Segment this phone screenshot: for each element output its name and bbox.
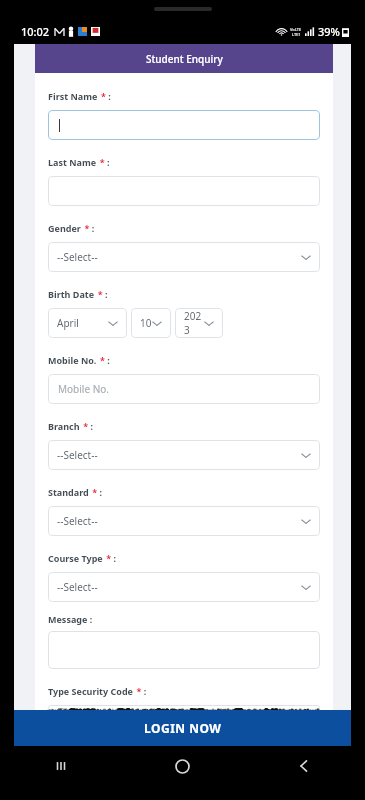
button[interactable]: LOGIN NOW [14, 710, 351, 746]
button[interactable] [48, 631, 320, 669]
staticText: April [57, 316, 108, 330]
staticText: Mobile No. [58, 382, 109, 396]
staticText: Birth Date * : [48, 283, 108, 302]
staticText: Type security code [58, 705, 145, 710]
staticText: First Name * : [48, 85, 111, 104]
staticText: Message : [48, 613, 93, 625]
button[interactable]: --Select-- [48, 506, 320, 536]
staticText: 2023 [184, 309, 204, 337]
button[interactable]: --Select-- [48, 572, 320, 602]
staticText: Standard * : [48, 481, 103, 500]
button[interactable]: April [48, 308, 127, 338]
staticText: Last Name * : [48, 151, 110, 170]
staticText: 10:02 [21, 24, 50, 39]
staticText: LTE1 [292, 32, 301, 37]
staticText: --Select-- [57, 514, 301, 528]
staticText: LOGIN NOW [144, 720, 222, 736]
button[interactable]: Mobile No. [48, 374, 320, 404]
button[interactable]: --Select-- [48, 242, 320, 272]
button[interactable]: Type security code [48, 705, 320, 710]
button[interactable]: Back [243, 746, 365, 786]
button[interactable]: 2023 [175, 308, 223, 338]
button[interactable] [48, 110, 320, 140]
staticText: Type Security Code * : [48, 680, 147, 699]
button[interactable]: --Select-- [48, 440, 320, 470]
button[interactable]: Recent apps [0, 746, 121, 786]
staticText: --Select-- [57, 580, 301, 594]
button[interactable]: 10 [131, 308, 171, 338]
staticText: 10 [140, 316, 152, 330]
staticText: Course Type * : [48, 547, 117, 566]
staticText: Mobile No. * : [48, 349, 110, 368]
staticText: --Select-- [57, 250, 301, 264]
staticText: Branch * : [48, 415, 93, 434]
staticText: Gender * : [48, 217, 95, 236]
staticText: 39% [318, 24, 340, 39]
button[interactable] [48, 176, 320, 206]
staticText: Student Enquiry [146, 52, 223, 66]
staticText: --Select-- [57, 448, 301, 462]
staticText: VoLTE [290, 27, 302, 32]
button[interactable]: Home [121, 746, 243, 786]
